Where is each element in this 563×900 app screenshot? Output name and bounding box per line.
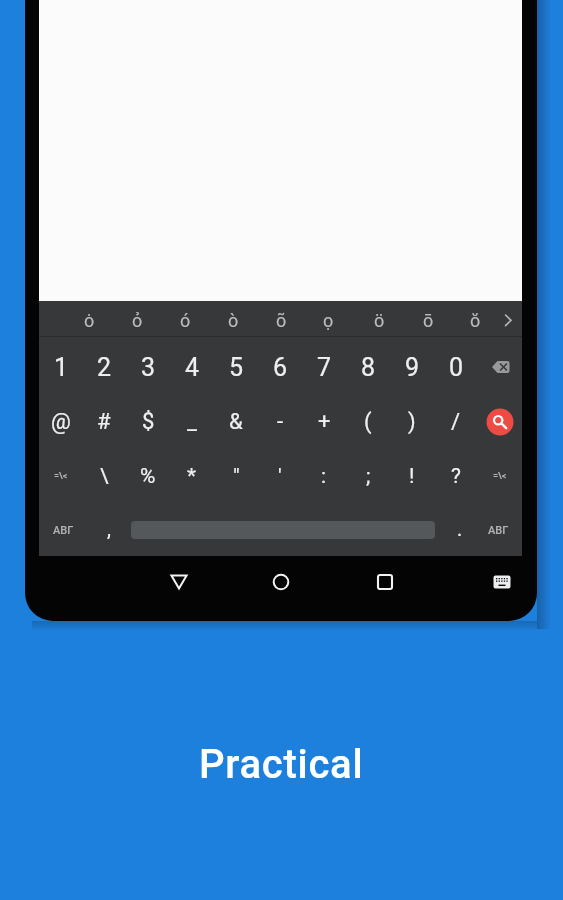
staticText: =\<: [493, 471, 507, 482]
button[interactable]: 6: [258, 343, 302, 391]
staticText: (: [364, 409, 372, 435]
button[interactable]: ): [390, 398, 434, 446]
staticText: ọ: [323, 310, 334, 331]
button[interactable]: .: [438, 504, 482, 552]
button[interactable]: [39, 301, 522, 556]
staticText: ō: [423, 310, 434, 331]
staticText: 4: [185, 353, 200, 382]
button[interactable]: ò: [211, 296, 255, 344]
button[interactable]: [478, 400, 522, 444]
button[interactable]: ;: [346, 452, 390, 500]
staticText: ŏ: [470, 310, 481, 331]
staticText: ö: [374, 310, 385, 331]
staticText: ò: [228, 310, 239, 331]
staticText: 5: [229, 353, 244, 382]
staticText: АВГ: [53, 524, 74, 537]
staticText: _: [187, 409, 197, 435]
button[interactable]: %: [126, 452, 170, 500]
staticText: #: [97, 409, 111, 435]
staticText: ': [278, 464, 282, 489]
button[interactable]: 5: [214, 343, 258, 391]
button[interactable]: !: [390, 452, 434, 500]
staticText: -: [277, 409, 284, 435]
button[interactable]: [479, 345, 523, 389]
button[interactable]: ö: [357, 296, 401, 344]
button[interactable]: ,: [87, 504, 131, 552]
staticText: @: [51, 409, 71, 435]
staticText: õ: [276, 310, 287, 331]
staticText: 7: [317, 353, 332, 382]
staticText: 2: [97, 353, 112, 382]
button[interactable]: @: [39, 398, 83, 446]
button[interactable]: =\<: [39, 452, 83, 500]
button[interactable]: [490, 572, 514, 592]
button[interactable]: õ: [259, 296, 303, 344]
button[interactable]: \: [82, 452, 126, 500]
button[interactable]: &: [214, 398, 258, 446]
button[interactable]: (: [346, 398, 390, 446]
button[interactable]: ": [214, 452, 258, 500]
staticText: ,: [107, 517, 111, 540]
button[interactable]: 0: [434, 343, 478, 391]
button[interactable]: /: [434, 398, 478, 446]
button[interactable]: ō: [406, 296, 450, 344]
staticText: \: [100, 464, 109, 489]
staticText: 1: [54, 353, 69, 382]
button[interactable]: [267, 568, 295, 596]
button[interactable]: 3: [126, 343, 170, 391]
staticText: $: [142, 409, 155, 435]
button[interactable]: ': [258, 452, 302, 500]
button[interactable]: ȯ: [67, 296, 111, 344]
staticText: *: [187, 464, 197, 489]
staticText: /: [451, 409, 461, 435]
staticText: ȯ: [84, 310, 95, 331]
staticText: Practical: [199, 741, 364, 788]
button[interactable]: $: [126, 398, 170, 446]
staticText: !: [409, 464, 415, 489]
staticText: .: [457, 517, 463, 540]
button[interactable]: _: [170, 398, 214, 446]
button[interactable]: 9: [390, 343, 434, 391]
button[interactable]: =\<: [478, 452, 522, 500]
staticText: ỏ: [132, 310, 143, 331]
button[interactable]: 4: [170, 343, 214, 391]
button[interactable]: ŏ: [453, 296, 497, 344]
button[interactable]: 8: [346, 343, 390, 391]
button[interactable]: ỏ: [115, 296, 159, 344]
button[interactable]: ?: [434, 452, 478, 500]
staticText: 6: [273, 353, 288, 382]
button[interactable]: :: [302, 452, 346, 500]
staticText: %: [140, 464, 156, 489]
staticText: 0: [449, 353, 464, 382]
button[interactable]: [371, 568, 399, 596]
staticText: ?: [451, 464, 461, 489]
button[interactable]: ọ: [306, 296, 350, 344]
staticText: 9: [405, 353, 420, 382]
staticText: :: [321, 464, 327, 489]
button[interactable]: -: [258, 398, 302, 446]
staticText: =\<: [54, 471, 68, 482]
button[interactable]: #: [82, 398, 126, 446]
button[interactable]: +: [302, 398, 346, 446]
staticText: ": [233, 464, 240, 489]
button[interactable]: [165, 568, 193, 596]
staticText: ): [408, 409, 416, 435]
button[interactable]: 7: [302, 343, 346, 391]
button[interactable]: *: [170, 452, 214, 500]
button[interactable]: АВГ: [41, 506, 85, 554]
button[interactable]: 1: [39, 343, 83, 391]
staticText: 8: [361, 353, 376, 382]
button[interactable]: [498, 310, 518, 330]
button[interactable]: АВГ: [476, 506, 520, 554]
staticText: &: [229, 409, 243, 435]
button[interactable]: 2: [82, 343, 126, 391]
staticText: ó: [180, 310, 191, 331]
staticText: +: [318, 409, 331, 435]
staticText: ;: [366, 464, 371, 489]
staticText: 3: [141, 353, 156, 382]
button[interactable]: ó: [163, 296, 207, 344]
staticText: АВГ: [488, 524, 509, 537]
